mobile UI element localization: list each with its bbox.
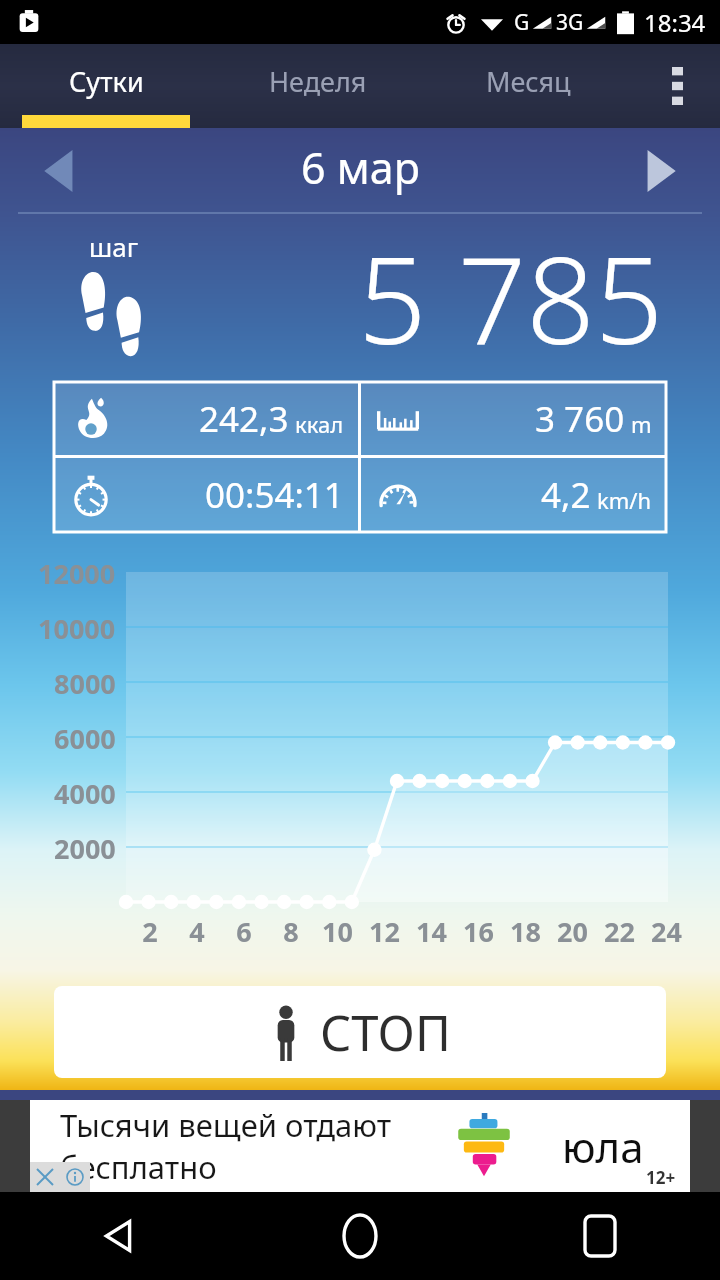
- staticText: Сутки: [69, 63, 144, 100]
- staticText: 6 мар: [301, 138, 420, 197]
- button[interactable]: СТОП: [54, 986, 666, 1078]
- staticText: 22: [604, 913, 635, 950]
- staticText: km/h: [597, 485, 652, 515]
- staticText: Неделя: [269, 63, 367, 100]
- staticText: 3 760: [535, 395, 625, 443]
- staticText: Тысячи вещей отдают: [60, 1104, 392, 1146]
- staticText: 12+: [646, 1166, 676, 1189]
- button[interactable]: Сутки: [0, 44, 212, 128]
- button[interactable]: Recent apps: [480, 1192, 720, 1280]
- staticText: 8000: [54, 665, 116, 702]
- staticText: 2000: [54, 830, 116, 867]
- button[interactable]: Close ad: [30, 1162, 60, 1192]
- staticText: 4000: [54, 775, 116, 812]
- button[interactable]: 3 760: [361, 382, 666, 455]
- staticText: 12000: [38, 555, 116, 592]
- staticText: 18: [510, 913, 541, 950]
- button[interactable]: Тысячи вещей отдают: [30, 1100, 690, 1192]
- button[interactable]: 242,3: [54, 382, 358, 455]
- button[interactable]: Ad information: [60, 1162, 90, 1192]
- staticText: 10000: [38, 610, 116, 647]
- staticText: 2: [142, 913, 158, 950]
- staticText: 18:34: [644, 6, 706, 39]
- staticText: 20: [557, 913, 588, 950]
- button[interactable]: Home: [240, 1192, 480, 1280]
- staticText: 8: [283, 913, 299, 950]
- button[interactable]: 00:54:11: [54, 458, 358, 532]
- staticText: бесплатно: [60, 1146, 217, 1188]
- staticText: m: [631, 409, 652, 439]
- staticText: 10: [322, 913, 353, 950]
- staticText: 24: [651, 913, 682, 950]
- staticText: 6: [236, 913, 252, 950]
- staticText: 14: [416, 913, 447, 950]
- staticText: 4,2: [541, 471, 591, 519]
- button[interactable]: Неделя: [212, 44, 423, 128]
- staticText: 16: [463, 913, 494, 950]
- button[interactable]: Back: [0, 1192, 240, 1280]
- staticText: 242,3: [199, 395, 289, 443]
- staticText: шаг: [89, 229, 139, 264]
- staticText: ккал: [295, 409, 344, 439]
- button[interactable]: Previous day: [24, 136, 94, 206]
- staticText: 4: [189, 913, 205, 950]
- staticText: G: [514, 8, 530, 37]
- button[interactable]: Next day: [626, 136, 696, 206]
- staticText: юла: [562, 1118, 644, 1175]
- staticText: 00:54:11: [205, 471, 344, 519]
- staticText: СТОП: [320, 999, 451, 1066]
- staticText: 6000: [54, 720, 116, 757]
- button[interactable]: 4,2: [361, 458, 666, 532]
- staticText: 5 785: [358, 216, 664, 374]
- button[interactable]: Месяц: [423, 44, 634, 128]
- staticText: 3G: [556, 8, 584, 37]
- staticText: Месяц: [486, 63, 571, 100]
- staticText: 12: [369, 913, 400, 950]
- button[interactable]: More options: [634, 44, 720, 128]
